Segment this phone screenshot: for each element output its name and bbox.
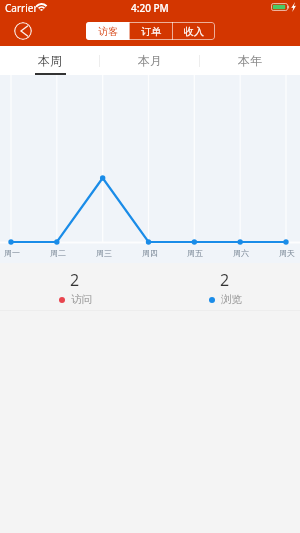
button[interactable]: 本年 xyxy=(200,46,300,75)
button[interactable]: 本月 xyxy=(100,46,200,75)
staticText: 2 xyxy=(220,269,230,291)
staticText: 收入 xyxy=(184,25,204,38)
staticText: 周五 xyxy=(187,248,203,258)
button[interactable]: 订单 xyxy=(130,22,172,40)
staticText: 周二 xyxy=(50,248,66,258)
staticText: 周三 xyxy=(96,248,112,258)
staticText: 2 xyxy=(70,269,80,291)
staticText: Carrier xyxy=(5,1,38,15)
staticText: 本年 xyxy=(238,53,262,68)
staticText: 本周 xyxy=(38,53,62,68)
button[interactable]: 2 xyxy=(0,263,150,311)
staticText: 4:20 PM xyxy=(131,1,169,15)
staticText: 本月 xyxy=(138,53,162,68)
button[interactable]: Back xyxy=(14,22,32,40)
staticText: 访客 xyxy=(98,25,118,38)
staticText: 访问 xyxy=(71,293,92,306)
staticText: 订单 xyxy=(141,25,161,38)
button[interactable]: 访客 xyxy=(86,22,129,40)
staticText: 浏览 xyxy=(221,293,242,306)
button[interactable]: 本周 xyxy=(0,46,100,75)
staticText: 周六 xyxy=(233,248,249,258)
staticText: 周四 xyxy=(142,248,158,258)
button[interactable]: 2 xyxy=(150,263,300,311)
staticText: 周一 xyxy=(4,248,20,258)
button[interactable]: 收入 xyxy=(173,22,215,40)
staticText: 周天 xyxy=(279,248,295,258)
